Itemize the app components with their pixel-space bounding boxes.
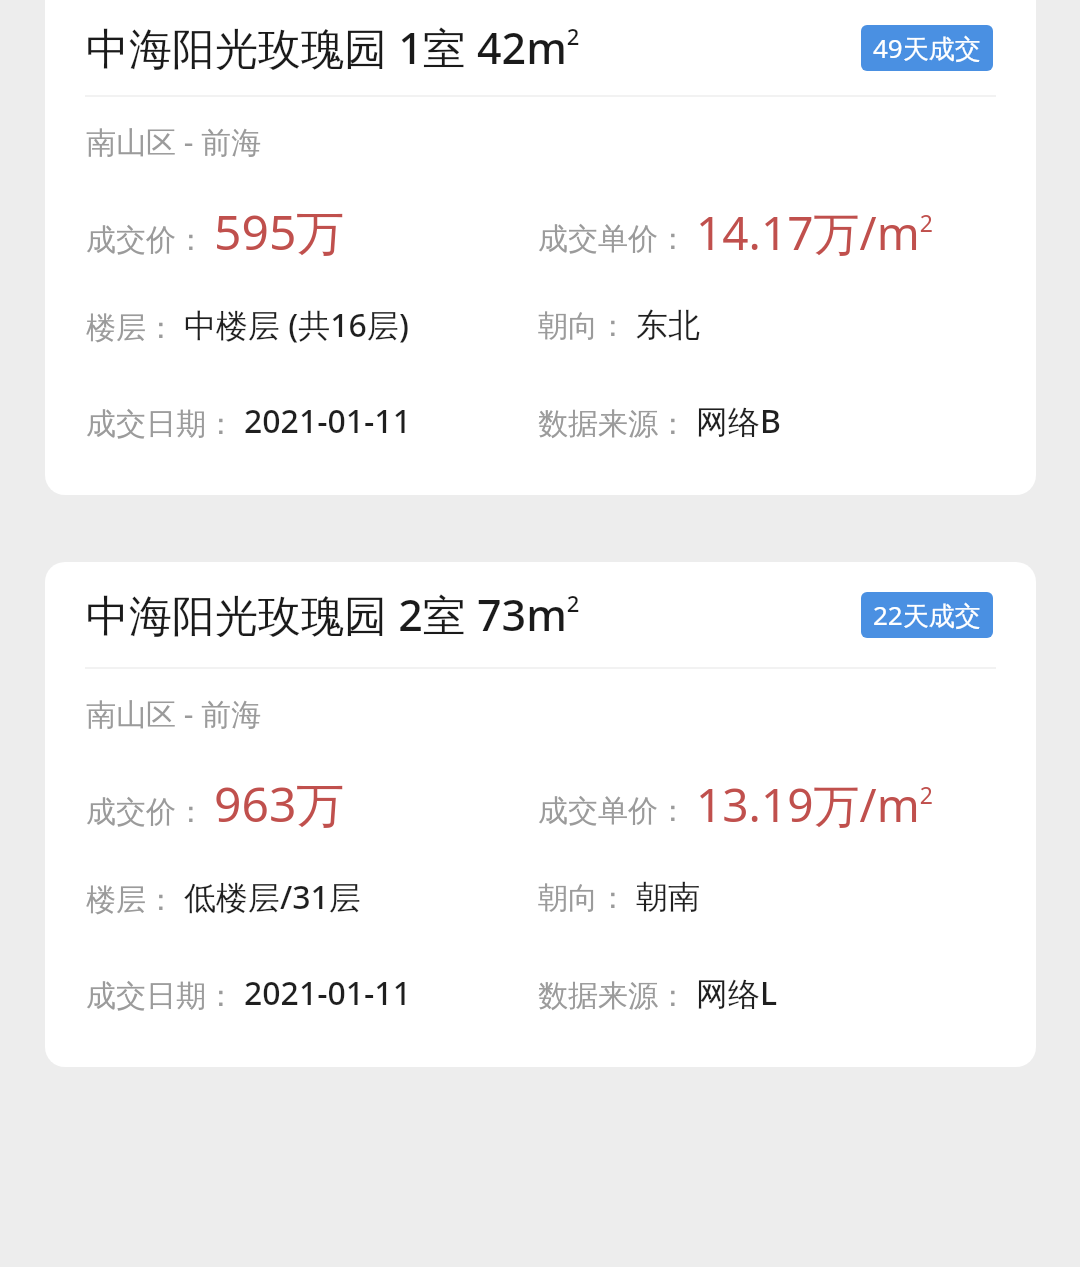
button[interactable]: 22天成交 <box>861 592 993 638</box>
button[interactable]: 49天成交 <box>861 25 993 71</box>
staticText: 成交单价： <box>538 220 688 258</box>
staticText: 网络B <box>696 399 781 443</box>
staticText: 2021-01-11 <box>244 399 411 443</box>
staticText: 网络L <box>696 971 778 1015</box>
staticText: 595万 <box>214 199 345 265</box>
staticText: 南山区 - 前海 <box>86 121 262 162</box>
staticText: 中海阳光玫瑰园 2室 73m2 <box>86 585 580 644</box>
staticText: 朝南 <box>636 877 700 917</box>
staticText: 成交日期： <box>86 405 236 443</box>
staticText: 成交价： <box>86 793 206 831</box>
staticText: 49天成交 <box>873 30 981 66</box>
staticText: 14.17万/m2 <box>696 201 933 264</box>
staticText: 963万 <box>214 771 345 837</box>
staticText: 成交价： <box>86 221 206 259</box>
staticText: 中海阳光玫瑰园 1室 42m2 <box>86 18 580 77</box>
staticText: 朝向： <box>538 879 628 917</box>
staticText: 朝向： <box>538 307 628 345</box>
staticText: 东北 <box>636 305 700 345</box>
staticText: 南山区 - 前海 <box>86 693 262 734</box>
button[interactable]: 中海阳光玫瑰园 2室 73m2 <box>45 562 1036 1067</box>
staticText: 楼层： <box>86 881 176 919</box>
staticText: 13.19万/m2 <box>696 773 933 836</box>
staticText: 中楼层 (共16层) <box>184 303 409 347</box>
staticText: 数据来源： <box>538 405 688 443</box>
staticText: 成交日期： <box>86 977 236 1015</box>
staticText: 成交单价： <box>538 792 688 830</box>
staticText: 2021-01-11 <box>244 971 411 1015</box>
staticText: 楼层： <box>86 309 176 347</box>
staticText: 低楼层/31层 <box>184 875 361 919</box>
other: 成交记录列表 <box>0 0 1080 1267</box>
staticText: 数据来源： <box>538 977 688 1015</box>
staticText: 22天成交 <box>873 597 981 633</box>
button[interactable]: 中海阳光玫瑰园 1室 42m2 <box>45 0 1036 495</box>
